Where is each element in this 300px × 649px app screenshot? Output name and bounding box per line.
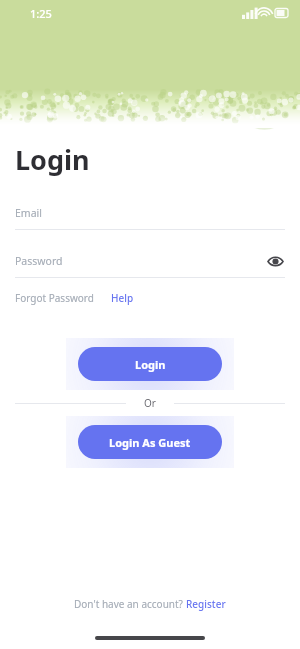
staticText: Login [135, 357, 166, 372]
staticText: Forgot Password [15, 291, 94, 305]
staticText: 1:25 [30, 6, 52, 21]
staticText: Password [15, 254, 63, 268]
staticText: Register [186, 597, 226, 611]
button[interactable]: Don't have an account? [74, 597, 226, 611]
button[interactable]: Password [15, 251, 285, 278]
button[interactable]: Login As Guest [78, 425, 222, 459]
staticText: Login As Guest [109, 435, 191, 450]
button[interactable]: Help [111, 291, 134, 305]
staticText: Don't have an account? [74, 597, 186, 611]
staticText: Or [144, 396, 156, 410]
button[interactable]: Show password [265, 251, 285, 271]
staticText: Email [15, 206, 42, 220]
staticText: Help [111, 291, 134, 305]
button[interactable]: Login [78, 347, 222, 381]
button[interactable]: Email [15, 203, 285, 230]
staticText: Login [15, 141, 90, 178]
button[interactable]: Forgot Password [15, 291, 94, 305]
